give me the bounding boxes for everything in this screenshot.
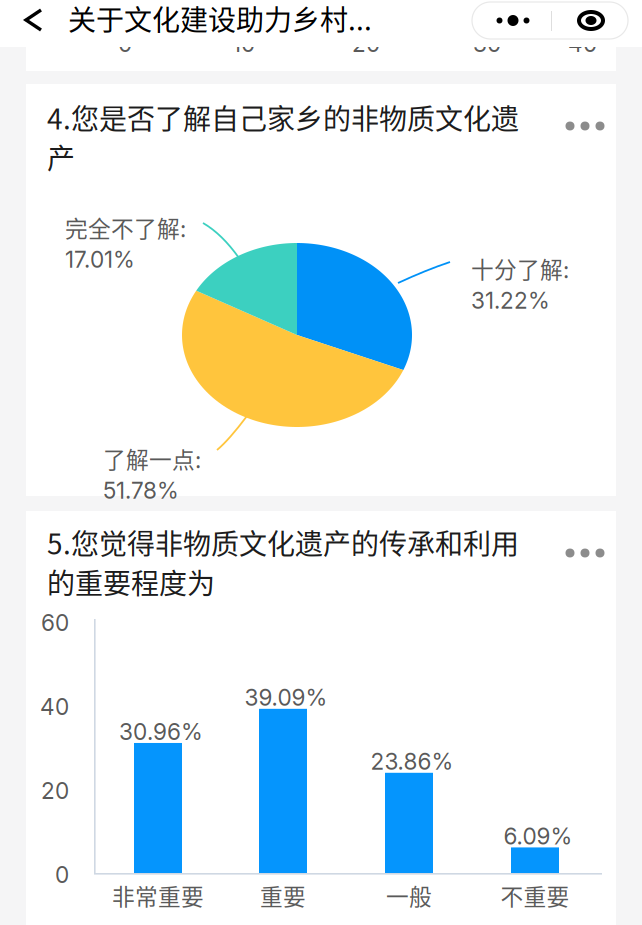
staticText: 重要: [260, 879, 306, 912]
staticText: 40: [40, 693, 69, 720]
button[interactable]: More: [554, 533, 616, 573]
staticText: 了解一点:: [103, 442, 201, 475]
staticText: 0: [55, 861, 69, 888]
staticText: 17.01%: [65, 246, 135, 273]
button[interactable]: More: [554, 106, 616, 146]
button[interactable]: Back: [0, 0, 55, 40]
button[interactable]: Close: [554, 2, 628, 39]
staticText: 40: [568, 30, 597, 57]
staticText: 30: [473, 30, 501, 57]
button[interactable]: Menu: [472, 2, 554, 39]
staticText: 一般: [386, 879, 432, 912]
staticText: 20: [352, 30, 380, 57]
staticText: 51.78%: [103, 477, 179, 504]
staticText: 十分了解:: [471, 252, 569, 285]
staticText: 非常重要: [112, 879, 204, 912]
staticText: 关于文化建设助力乡村...: [68, 0, 372, 38]
staticText: 0: [118, 30, 132, 57]
staticText: 60: [41, 609, 69, 636]
staticText: 20: [41, 777, 69, 804]
staticText: 30.96%: [119, 718, 203, 745]
staticText: 10: [232, 30, 255, 57]
staticText: 31.22%: [471, 287, 550, 314]
staticText: 4.您是否了解自己家乡的非物质文化遗产: [47, 97, 519, 177]
staticText: 不重要: [500, 879, 569, 912]
staticText: 5.您觉得非物质文化遗产的传承和利用的重要程度为: [47, 522, 519, 602]
staticText: 39.09%: [244, 684, 327, 711]
staticText: 6.09%: [503, 822, 572, 850]
staticText: 23.86%: [370, 748, 453, 775]
staticText: 完全不了解:: [65, 211, 186, 244]
